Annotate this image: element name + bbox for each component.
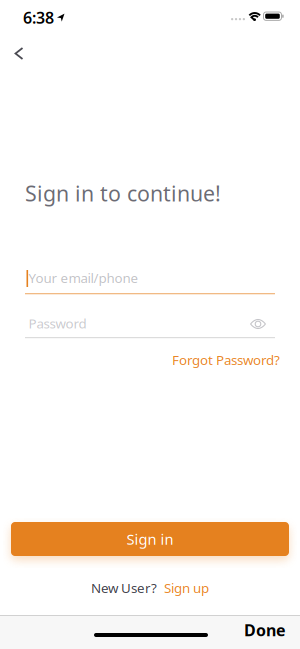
- staticText: New User?: [91, 579, 157, 597]
- staticText: Password: [28, 314, 86, 332]
- staticText: Your email/phone: [28, 269, 138, 287]
- button[interactable]: Show password: [246, 314, 270, 334]
- button[interactable]: Done: [236, 616, 294, 644]
- staticText: Forgot Password?: [172, 351, 280, 369]
- staticText: Done: [244, 619, 286, 641]
- staticText: Sign up: [164, 579, 209, 597]
- staticText: Sign in to continue!: [25, 179, 221, 207]
- staticText: Sign in: [126, 529, 173, 549]
- button[interactable]: Forgot Password?: [172, 351, 280, 369]
- button[interactable]: Sign in: [11, 522, 289, 556]
- button[interactable]: Back: [7, 40, 30, 67]
- staticText: 6:38: [23, 7, 54, 28]
- button[interactable]: Sign up: [164, 579, 209, 597]
